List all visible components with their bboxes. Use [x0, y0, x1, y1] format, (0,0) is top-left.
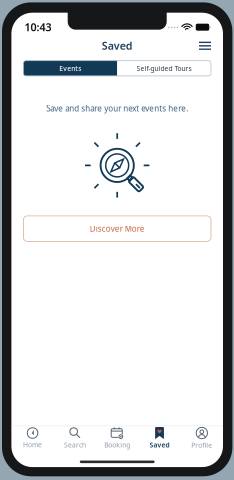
button[interactable]: Search	[54, 423, 96, 452]
staticText: Self-guided Tours	[137, 64, 192, 73]
staticText: Booking	[104, 440, 130, 449]
staticText: Discover More	[90, 223, 145, 234]
button[interactable]: Discover More	[23, 216, 211, 241]
button[interactable]: Booking	[96, 423, 138, 452]
button[interactable]: Saved	[138, 423, 181, 452]
staticText: Saved	[149, 441, 169, 449]
button[interactable]: Home	[11, 423, 54, 452]
button[interactable]: Profile	[181, 423, 223, 453]
button[interactable]: Self-guided Tours	[117, 61, 211, 76]
staticText: Events	[59, 64, 81, 73]
staticText: Profile	[191, 441, 212, 450]
staticText: Save and share your next events here.	[46, 103, 188, 114]
button[interactable]: Events	[23, 61, 117, 76]
staticText: Search	[64, 440, 86, 449]
staticText: Saved	[102, 39, 133, 53]
staticText: 10:43	[24, 20, 51, 34]
button[interactable]: Menu	[193, 37, 217, 55]
staticText: Home	[23, 440, 42, 449]
